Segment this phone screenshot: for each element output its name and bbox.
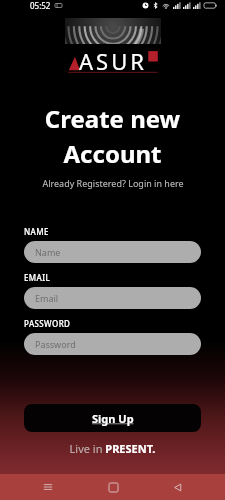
button[interactable]: Home <box>96 474 130 500</box>
button[interactable]: Name <box>24 241 201 263</box>
staticText: Already Registered? Login in here <box>42 177 184 189</box>
button[interactable]: Sign Up <box>24 404 201 432</box>
button[interactable]: Email <box>24 287 201 309</box>
button[interactable]: Already Registered? Login in here <box>0 177 225 189</box>
staticText: Name <box>35 246 61 258</box>
staticText: Sign Up <box>92 411 134 426</box>
staticText: Password <box>35 338 76 350</box>
staticText: Live in PRESENT. <box>0 441 225 456</box>
staticText: 05:52 <box>30 0 51 11</box>
staticText: Email <box>35 292 59 304</box>
staticText: Create new <box>0 102 225 135</box>
button[interactable]: Recent apps <box>31 474 65 500</box>
staticText: ASUR <box>79 46 147 76</box>
staticText: PASSWORD <box>24 318 71 329</box>
staticText: Account <box>0 137 225 170</box>
staticText: EMAIL <box>24 272 51 283</box>
button[interactable]: Back <box>160 474 194 500</box>
button[interactable]: Password <box>24 333 201 355</box>
staticText: NAME <box>24 226 49 237</box>
